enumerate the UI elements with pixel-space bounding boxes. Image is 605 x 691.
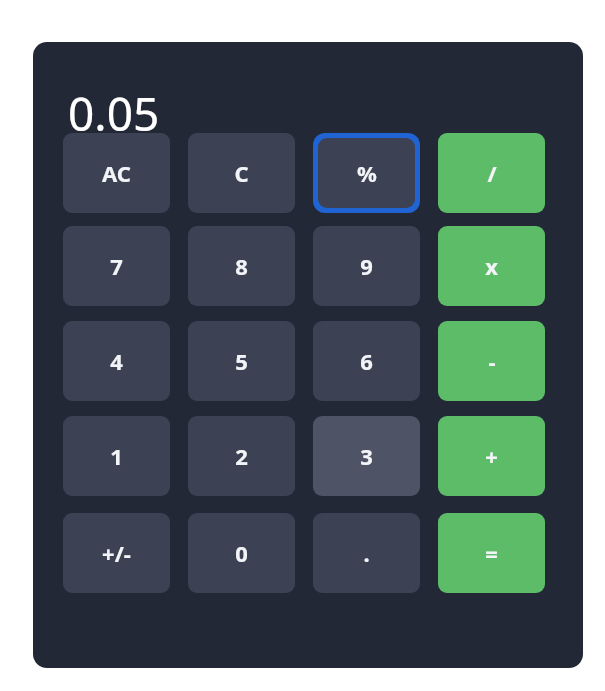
- staticText: .: [363, 538, 370, 568]
- button[interactable]: %: [318, 138, 415, 208]
- staticText: %: [357, 158, 377, 188]
- button[interactable]: x: [438, 226, 545, 306]
- button[interactable]: 3: [313, 416, 420, 496]
- button[interactable]: +: [438, 416, 545, 496]
- staticText: 0.05: [68, 82, 160, 140]
- button[interactable]: 6: [313, 321, 420, 401]
- staticText: 3: [360, 441, 373, 471]
- button[interactable]: AC: [63, 133, 170, 213]
- staticText: -: [488, 346, 496, 376]
- button[interactable]: 7: [63, 226, 170, 306]
- staticText: +/-: [102, 538, 131, 568]
- staticText: 7: [110, 251, 123, 281]
- staticText: AC: [102, 158, 131, 188]
- staticText: /: [487, 158, 497, 188]
- button[interactable]: 0: [188, 513, 295, 593]
- button[interactable]: +/-: [63, 513, 170, 593]
- button[interactable]: 8: [188, 226, 295, 306]
- staticText: =: [485, 538, 498, 568]
- staticText: 6: [360, 346, 373, 376]
- button[interactable]: 5: [188, 321, 295, 401]
- staticText: +: [485, 441, 498, 471]
- button[interactable]: -: [438, 321, 545, 401]
- staticText: x: [485, 251, 498, 281]
- button[interactable]: 9: [313, 226, 420, 306]
- staticText: 0: [235, 538, 248, 568]
- button[interactable]: .: [313, 513, 420, 593]
- button[interactable]: /: [438, 133, 545, 213]
- staticText: 2: [235, 441, 248, 471]
- staticText: 4: [110, 346, 123, 376]
- button[interactable]: 2: [188, 416, 295, 496]
- button[interactable]: 4: [63, 321, 170, 401]
- button[interactable]: C: [188, 133, 295, 213]
- staticText: 9: [360, 251, 373, 281]
- staticText: 5: [235, 346, 248, 376]
- staticText: C: [234, 158, 249, 188]
- staticText: 1: [110, 441, 123, 471]
- button[interactable]: =: [438, 513, 545, 593]
- button[interactable]: 1: [63, 416, 170, 496]
- staticText: 8: [235, 251, 248, 281]
